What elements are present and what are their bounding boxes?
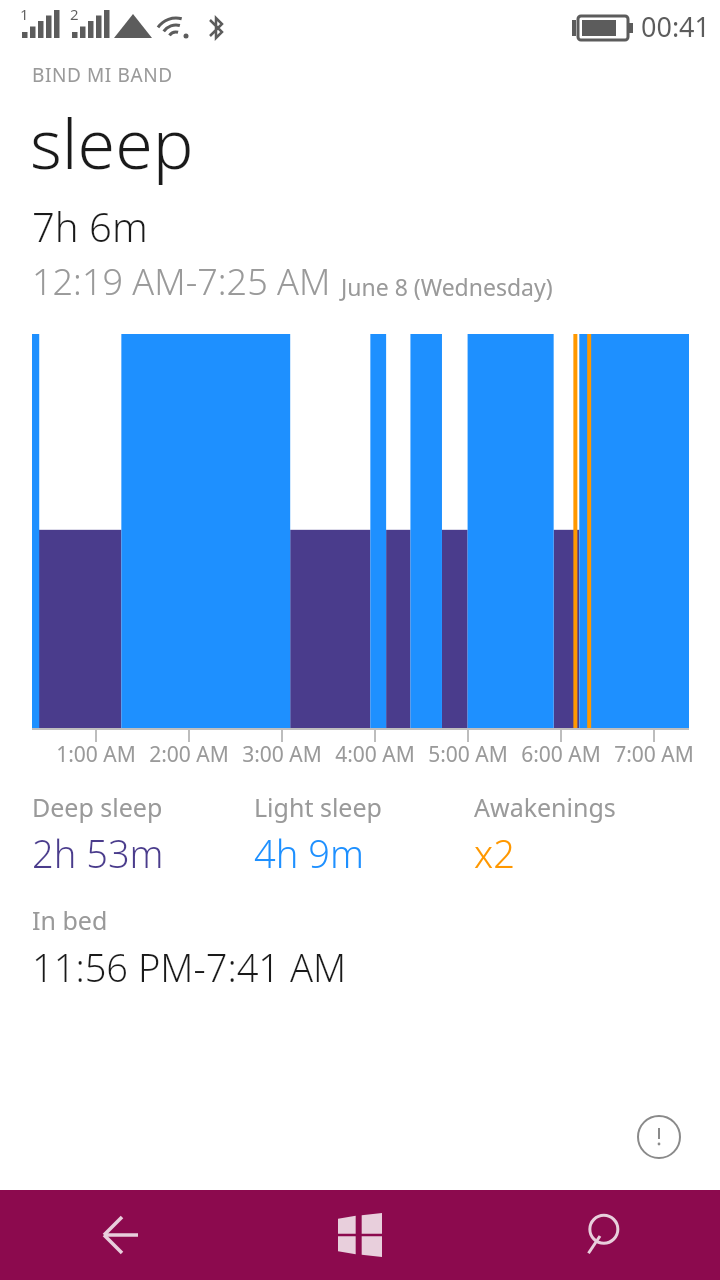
staticText: 4:00 AM	[327, 740, 423, 769]
button[interactable]: Search	[480, 1190, 720, 1280]
staticText: BIND MI BAND	[32, 62, 173, 88]
staticText: Light sleep	[254, 790, 382, 824]
staticText: 1:00 AM	[48, 740, 144, 769]
staticText: Deep sleep	[32, 790, 163, 824]
staticText: 12:19 AM-7:25 AM	[32, 257, 331, 306]
button[interactable]: Back	[0, 1190, 240, 1280]
staticText: 1	[20, 4, 29, 24]
staticText: June 8 (Wednesday)	[341, 271, 553, 302]
staticText: 4h 9m	[254, 827, 364, 879]
button[interactable]: Start	[240, 1190, 480, 1280]
staticText: sleep	[30, 96, 194, 189]
staticText: 3:00 AM	[234, 740, 330, 769]
staticText: 2:00 AM	[141, 740, 237, 769]
staticText: 11:56 PM-7:41 AM	[32, 941, 347, 993]
staticText: Awakenings	[474, 790, 616, 824]
staticText: 6:00 AM	[513, 740, 609, 769]
staticText: 7:00 AM	[606, 740, 702, 769]
staticText: 00:41	[641, 8, 711, 45]
staticText: In bed	[32, 903, 108, 937]
staticText: x2	[474, 827, 515, 879]
staticText: 2h 53m	[32, 827, 164, 879]
button[interactable]: More info	[636, 1114, 682, 1160]
staticText: 5:00 AM	[420, 740, 516, 769]
staticText: 7h 6m	[32, 199, 148, 253]
staticText: 2	[70, 4, 79, 24]
